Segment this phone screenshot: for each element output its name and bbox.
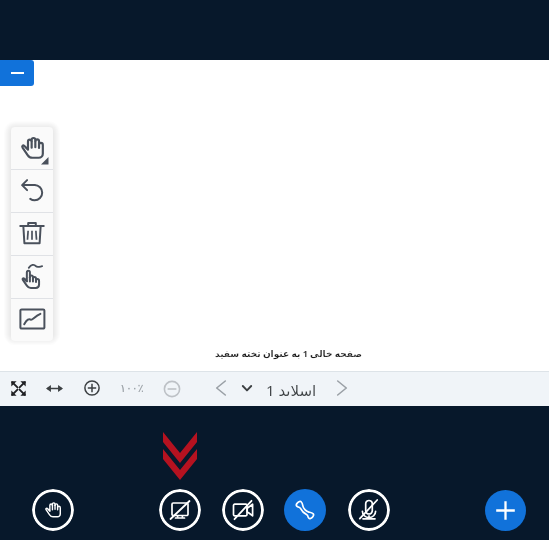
button[interactable]: Delete — [11, 213, 53, 255]
button[interactable]: Camera off — [222, 489, 264, 531]
button[interactable]: Share screen — [159, 489, 201, 531]
button[interactable]: Add — [485, 490, 526, 531]
button[interactable]: Next slide — [333, 379, 351, 397]
button[interactable]: Fullscreen — [9, 379, 28, 398]
button[interactable]: Chart — [11, 299, 53, 341]
button[interactable]: Pan — [11, 127, 53, 169]
button[interactable]: Draw — [11, 256, 53, 298]
button[interactable]: اسلاید 1 — [262, 380, 320, 396]
button[interactable]: Zoom in — [83, 379, 101, 397]
button[interactable]: Raise hand — [32, 489, 74, 531]
button[interactable]: Slide menu — [238, 379, 256, 397]
button[interactable]: Previous slide — [212, 379, 230, 397]
button[interactable]: End call — [284, 489, 326, 531]
button[interactable]: Mic off — [348, 489, 390, 531]
button[interactable]: Fit width — [45, 379, 64, 398]
staticText: ۱۰۰٪ — [120, 382, 144, 395]
staticText: صفحه خالی 1 به عنوان تخته سفید — [215, 347, 362, 359]
staticText: اسلاید 1 — [266, 380, 317, 396]
button[interactable]: Undo — [11, 170, 53, 212]
button[interactable]: Zoom out — [163, 380, 181, 398]
button[interactable]: Collapse — [0, 60, 34, 86]
